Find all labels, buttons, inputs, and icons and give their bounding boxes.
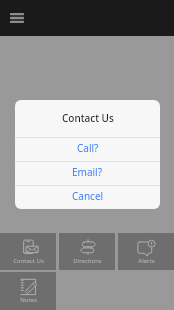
staticText: Contact Us (62, 111, 114, 125)
button[interactable]: Email? (15, 162, 160, 185)
button[interactable]: Call? (15, 138, 160, 161)
staticText: Cancel (72, 189, 104, 203)
button[interactable]: Alerts (118, 233, 174, 270)
button[interactable]: Notes (0, 272, 56, 310)
staticText: Email? (72, 165, 103, 179)
staticText: Notes (20, 296, 37, 304)
button[interactable]: Cancel (15, 186, 160, 209)
staticText: Alerts (138, 257, 155, 265)
staticText: Directions (73, 257, 102, 265)
button[interactable]: Open navigation menu (3, 4, 31, 32)
staticText: Contact Us (13, 257, 44, 265)
button[interactable]: Directions (59, 233, 115, 270)
button[interactable]: Contact Us (0, 233, 56, 270)
staticText: Call? (77, 141, 99, 155)
